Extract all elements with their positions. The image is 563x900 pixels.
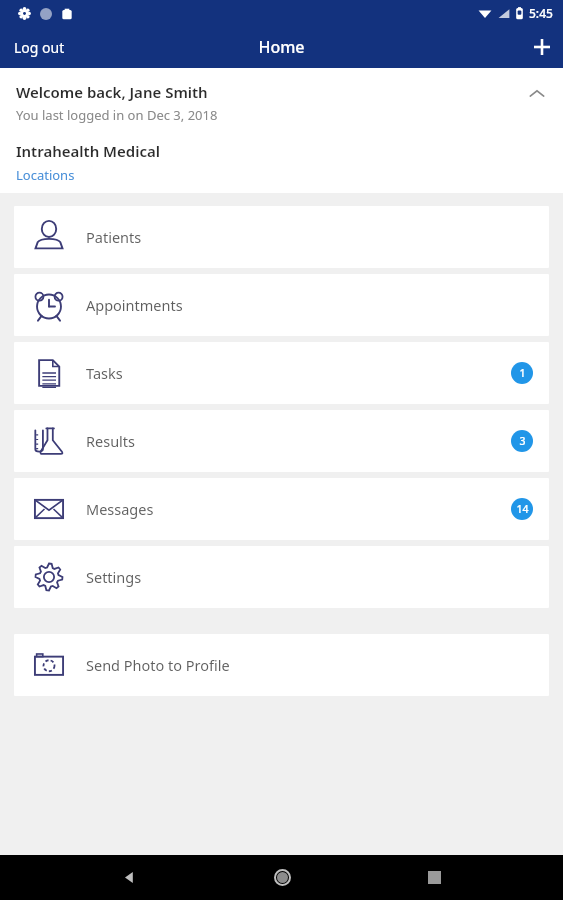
button[interactable]: Settings [14,546,549,608]
staticText: Settings [86,567,142,587]
button[interactable]: Messages [14,478,549,540]
staticText: Home [258,36,305,58]
staticText: 3 [519,434,526,448]
button[interactable]: Collapse [517,74,557,114]
button[interactable]: Log out [0,30,79,65]
button[interactable]: Home [258,855,306,900]
staticText: Results [86,431,136,451]
staticText: You last logged in on Dec 3, 2018 [16,106,218,124]
staticText: 5:45 [529,5,553,21]
button[interactable]: Send Photo to Profile [14,634,549,696]
button[interactable]: Patients [14,206,549,268]
staticText: Tasks [86,363,123,383]
staticText: 14 [516,502,529,516]
button[interactable]: Add [521,26,563,68]
button[interactable]: Appointments [14,274,549,336]
staticText: Log out [14,38,65,57]
staticText: Patients [86,227,142,247]
staticText: Welcome back, Jane Smith [16,82,208,102]
button[interactable]: Tasks [14,342,549,404]
staticText: Locations [16,166,75,184]
staticText: 1 [519,366,526,380]
staticText: Intrahealth Medical [16,141,161,161]
staticText: Appointments [86,295,183,315]
staticText: Messages [86,499,154,519]
button[interactable]: Recent apps [410,855,458,900]
button[interactable]: Back [105,855,153,900]
button[interactable]: Results [14,410,549,472]
staticText: Send Photo to Profile [86,655,230,675]
button[interactable]: Locations [16,166,75,184]
